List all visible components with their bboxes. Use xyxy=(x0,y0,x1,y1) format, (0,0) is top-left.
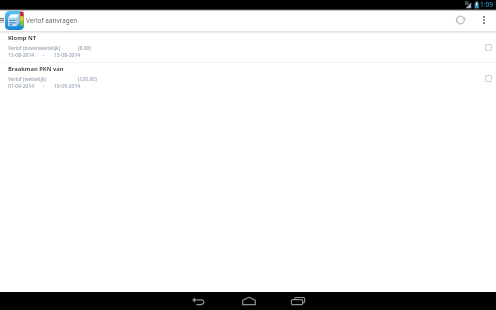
staticText: (120.00) xyxy=(78,76,97,83)
button[interactable]: Refresh xyxy=(448,9,472,31)
button[interactable]: Back xyxy=(180,292,217,310)
button[interactable]: Select item xyxy=(480,39,496,55)
staticText: 15-08-2014 xyxy=(54,52,81,59)
button[interactable]: Braakman PKN van xyxy=(0,63,496,93)
staticText: (8.00) xyxy=(78,45,91,52)
staticText: - xyxy=(43,83,45,90)
staticText: 01-09-2014 xyxy=(8,83,35,90)
staticText: 1:09 xyxy=(480,0,493,9)
staticText: Verlof (bovenwettelijk) xyxy=(8,45,61,52)
staticText: 19-09-2014 xyxy=(54,83,81,90)
button[interactable]: Open navigation drawer xyxy=(0,9,5,31)
button[interactable]: Select item xyxy=(480,70,496,86)
staticText: Klomp NT xyxy=(8,34,37,42)
staticText: Braakman PKN van xyxy=(8,65,64,73)
staticText: - xyxy=(43,52,45,59)
staticText: Verlof aanvragen xyxy=(26,16,78,25)
button[interactable]: Home xyxy=(230,292,267,310)
button[interactable]: Recent apps xyxy=(279,292,316,310)
staticText: Verlof (wettelijk) xyxy=(8,76,46,83)
staticText: 15-08-2014 xyxy=(8,52,35,59)
button[interactable]: More options xyxy=(472,9,496,31)
button[interactable]: Klomp NT xyxy=(0,32,496,62)
